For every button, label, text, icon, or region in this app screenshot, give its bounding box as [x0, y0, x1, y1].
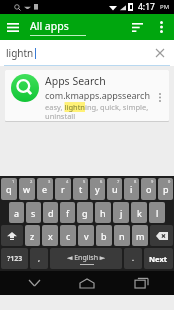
staticText: ◄ English ► [67, 253, 106, 263]
button[interactable]: e [37, 178, 53, 200]
button[interactable]: Next [144, 248, 173, 269]
staticText: 4:17 [138, 1, 155, 13]
staticText: b [101, 230, 107, 242]
button[interactable]: Home [67, 271, 107, 295]
staticText: ?123 [7, 254, 23, 264]
button[interactable]: a [9, 202, 24, 223]
button[interactable]: o [141, 178, 156, 200]
staticText: 8 [134, 179, 137, 184]
button[interactable]: b [96, 225, 112, 246]
button[interactable]: Clear search [152, 45, 168, 61]
staticText: 2 [30, 179, 33, 184]
button[interactable]: , [30, 248, 48, 269]
button[interactable]: ?123 [1, 248, 28, 269]
staticText: 0 [168, 179, 171, 184]
button[interactable]: p [158, 178, 173, 200]
button[interactable]: m [132, 225, 148, 246]
staticText: lightn [6, 46, 34, 60]
staticText: All apps [30, 19, 69, 33]
staticText: 6 [100, 179, 103, 184]
button[interactable]: n [114, 225, 130, 246]
button[interactable]: u [107, 178, 122, 200]
button[interactable]: j [113, 202, 129, 223]
staticText: h [100, 207, 106, 219]
button[interactable]: t [73, 178, 88, 200]
button[interactable]: c [60, 225, 76, 246]
staticText: y [95, 183, 100, 195]
staticText: com.kmapps.appssearch [45, 89, 150, 101]
button[interactable]: s [26, 202, 41, 223]
staticText: x [48, 230, 53, 242]
button[interactable]: Recent apps [121, 271, 161, 295]
staticText: 3 [48, 179, 51, 184]
staticText: p [163, 183, 169, 195]
staticText: 1 [12, 179, 15, 184]
button[interactable]: Delete [150, 225, 173, 246]
button[interactable]: f [60, 202, 75, 223]
button[interactable]: Sort [124, 14, 150, 40]
staticText: w [23, 183, 31, 195]
staticText: n [119, 230, 125, 242]
button[interactable]: v [78, 225, 94, 246]
staticText: 7 [117, 179, 120, 184]
staticText: k [137, 207, 142, 219]
staticText: g [82, 207, 88, 219]
staticText: Next [149, 254, 168, 264]
staticText: q [6, 183, 12, 195]
staticText: PM [160, 3, 170, 11]
staticText: f [66, 207, 70, 219]
staticText: , [38, 254, 40, 264]
staticText: a [14, 207, 20, 219]
staticText: d [48, 207, 54, 219]
button[interactable]: i [124, 178, 139, 200]
button[interactable]: g [77, 202, 93, 223]
button[interactable]: d [43, 202, 58, 223]
button[interactable]: h [95, 202, 111, 223]
staticText: e [42, 183, 48, 195]
button[interactable]: Shift [1, 225, 23, 246]
button[interactable]: x [42, 225, 58, 246]
staticText: 4 [66, 179, 69, 184]
staticText: s [31, 207, 36, 219]
staticText: 5 [83, 179, 86, 184]
staticText: l [156, 207, 159, 219]
staticText: easy, lightning, quick, simple, uninstal… [45, 102, 153, 121]
staticText: . [132, 254, 134, 264]
button[interactable]: All apps [30, 19, 86, 36]
button[interactable]: q [1, 178, 17, 200]
button[interactable]: More options [150, 16, 172, 38]
button[interactable]: z [25, 225, 40, 246]
button[interactable]: Space [50, 248, 122, 269]
button[interactable]: k [131, 202, 147, 223]
staticText: 9 [151, 179, 154, 184]
staticText: o [146, 183, 152, 195]
button[interactable]: App options [153, 74, 167, 121]
staticText: v [84, 230, 89, 242]
staticText: Apps Search [45, 74, 106, 88]
button[interactable]: . [124, 248, 142, 269]
staticText: u [112, 183, 118, 195]
button[interactable]: l [149, 202, 165, 223]
staticText: i [130, 183, 133, 195]
staticText: t [79, 183, 83, 195]
staticText: c [66, 230, 71, 242]
button[interactable]: Back [14, 271, 54, 295]
staticText: z [30, 230, 35, 242]
staticText: j [120, 207, 123, 219]
button[interactable]: r [55, 178, 71, 200]
button[interactable]: w [19, 178, 35, 200]
button[interactable]: Open navigation drawer [0, 14, 26, 40]
button[interactable]: y [90, 178, 105, 200]
button[interactable]: Apps Search [5, 70, 169, 121]
staticText: m [136, 230, 145, 242]
staticText: r [61, 183, 65, 195]
